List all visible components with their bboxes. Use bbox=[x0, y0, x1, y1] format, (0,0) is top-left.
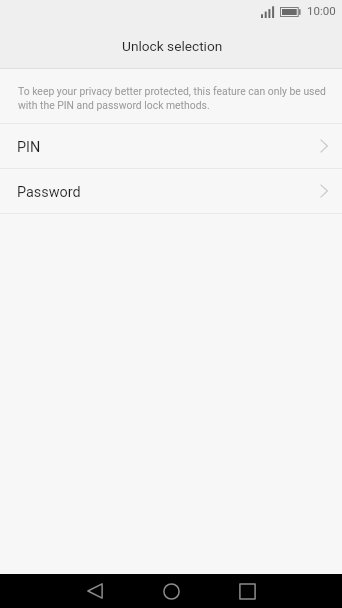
staticText: 10:00 bbox=[307, 4, 336, 17]
button[interactable]: PIN bbox=[0, 124, 342, 168]
staticText: To keep your privacy better protected, t… bbox=[18, 85, 330, 112]
staticText: Unlock selection bbox=[122, 38, 223, 54]
staticText: Password bbox=[17, 184, 81, 201]
button[interactable]: Recents bbox=[209, 574, 285, 608]
button[interactable]: Password bbox=[0, 169, 342, 213]
button[interactable]: Home bbox=[133, 574, 209, 608]
button[interactable]: Back bbox=[57, 574, 133, 608]
staticText: PIN bbox=[17, 139, 41, 156]
